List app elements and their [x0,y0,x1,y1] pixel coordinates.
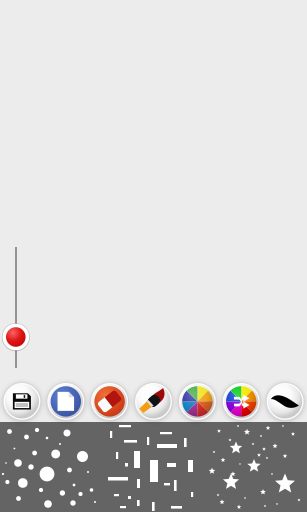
button[interactable]: Colour palette [176,380,219,423]
button[interactable]: New document [44,380,87,423]
button[interactable]: Dots pattern [0,422,103,512]
button[interactable]: Bars pattern [103,422,205,512]
button[interactable]: Stroke style [264,380,306,423]
button[interactable]: Eraser [88,380,131,423]
button[interactable]: Brush [132,380,175,423]
button[interactable]: Stars pattern [205,422,307,512]
button[interactable]: Swap colours [220,380,262,423]
button[interactable]: Save [1,380,43,423]
